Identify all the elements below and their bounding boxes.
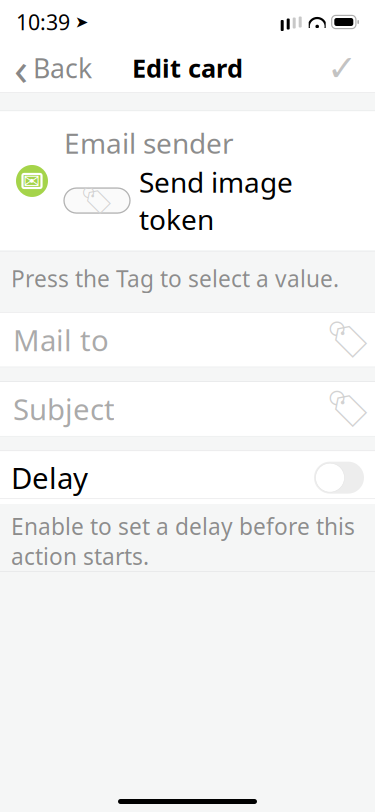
staticText: Delay (11, 458, 88, 497)
button[interactable]: Select tag value (64, 188, 130, 213)
staticText: Subject (13, 389, 115, 428)
staticText: Send image token (139, 163, 293, 238)
button[interactable]: Subject (0, 382, 375, 436)
staticText: ‹ (14, 38, 28, 98)
button[interactable]: Mail to (0, 313, 375, 367)
button[interactable]: Save (315, 46, 369, 90)
button[interactable]: Delay (0, 451, 375, 504)
staticText: Mail to (13, 320, 109, 359)
staticText: Press the Tag to select a value. (11, 263, 339, 293)
staticText: 🏷 (325, 388, 371, 429)
button[interactable]: ✉ (0, 111, 375, 251)
staticText: 🏷 (325, 319, 371, 360)
staticText: Enable to set a delay before this action… (11, 511, 355, 571)
staticText: Edit card (132, 51, 243, 85)
staticText: 🏷 (80, 185, 114, 216)
staticText: ✓ (327, 48, 357, 88)
button[interactable]: ‹ (6, 46, 100, 90)
staticText: Email sender (64, 124, 234, 161)
staticText: 10:39 (16, 8, 70, 36)
staticText: ➤ (70, 13, 88, 31)
staticText: Back (33, 50, 92, 86)
staticText: ✉ (23, 170, 40, 192)
